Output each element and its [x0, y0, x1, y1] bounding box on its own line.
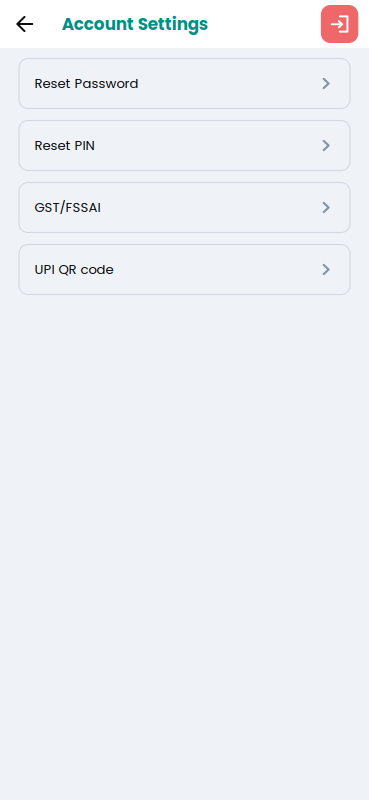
button[interactable]: Back [0, 0, 32, 48]
staticText: Account Settings [62, 12, 208, 36]
button[interactable]: Log out [321, 5, 358, 43]
button[interactable]: Reset PIN [19, 120, 350, 170]
staticText: UPI QR code [35, 260, 114, 279]
button[interactable]: UPI QR code [19, 244, 350, 294]
button[interactable]: GST/FSSAI [19, 182, 350, 232]
staticText: GST/FSSAI [35, 198, 101, 217]
button[interactable]: Reset Password [19, 58, 350, 108]
staticText: Reset Password [35, 74, 139, 93]
staticText: Reset PIN [35, 136, 95, 155]
